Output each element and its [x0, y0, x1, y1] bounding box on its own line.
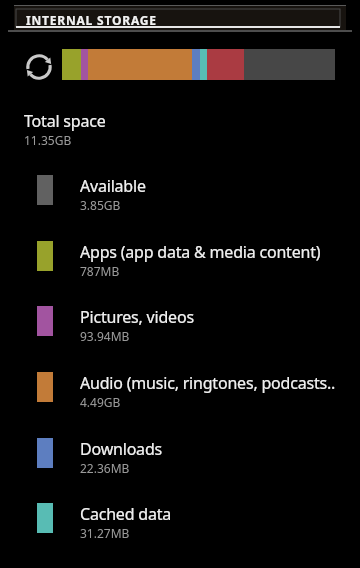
staticText: 22.36MB: [80, 460, 130, 476]
staticText: 93.94MB: [80, 328, 130, 344]
button[interactable]: Audio (music, ringtones, podcasts..: [0, 364, 360, 428]
button[interactable]: Cached data: [0, 495, 360, 559]
staticText: 787MB: [80, 263, 120, 279]
staticText: Audio (music, ringtones, podcasts..: [80, 372, 336, 394]
staticText: 4.49GB: [80, 394, 121, 410]
staticText: 31.27MB: [80, 525, 130, 541]
staticText: Apps (app data & media content): [80, 241, 321, 263]
button[interactable]: Pictures, videos: [0, 298, 360, 362]
staticText: 3.85GB: [80, 197, 121, 213]
button[interactable]: [24, 52, 54, 82]
staticText: Pictures, videos: [80, 306, 194, 328]
button[interactable]: Available: [0, 167, 360, 231]
staticText: Downloads: [80, 438, 162, 460]
staticText: Cached data: [80, 503, 172, 525]
button[interactable]: Apps (app data & media content): [0, 233, 360, 297]
staticText: Available: [80, 175, 146, 197]
staticText: Total space: [24, 110, 106, 132]
staticText: INTERNAL STORAGE: [26, 12, 157, 28]
button[interactable]: Downloads: [0, 430, 360, 494]
staticText: 11.35GB: [24, 132, 72, 148]
